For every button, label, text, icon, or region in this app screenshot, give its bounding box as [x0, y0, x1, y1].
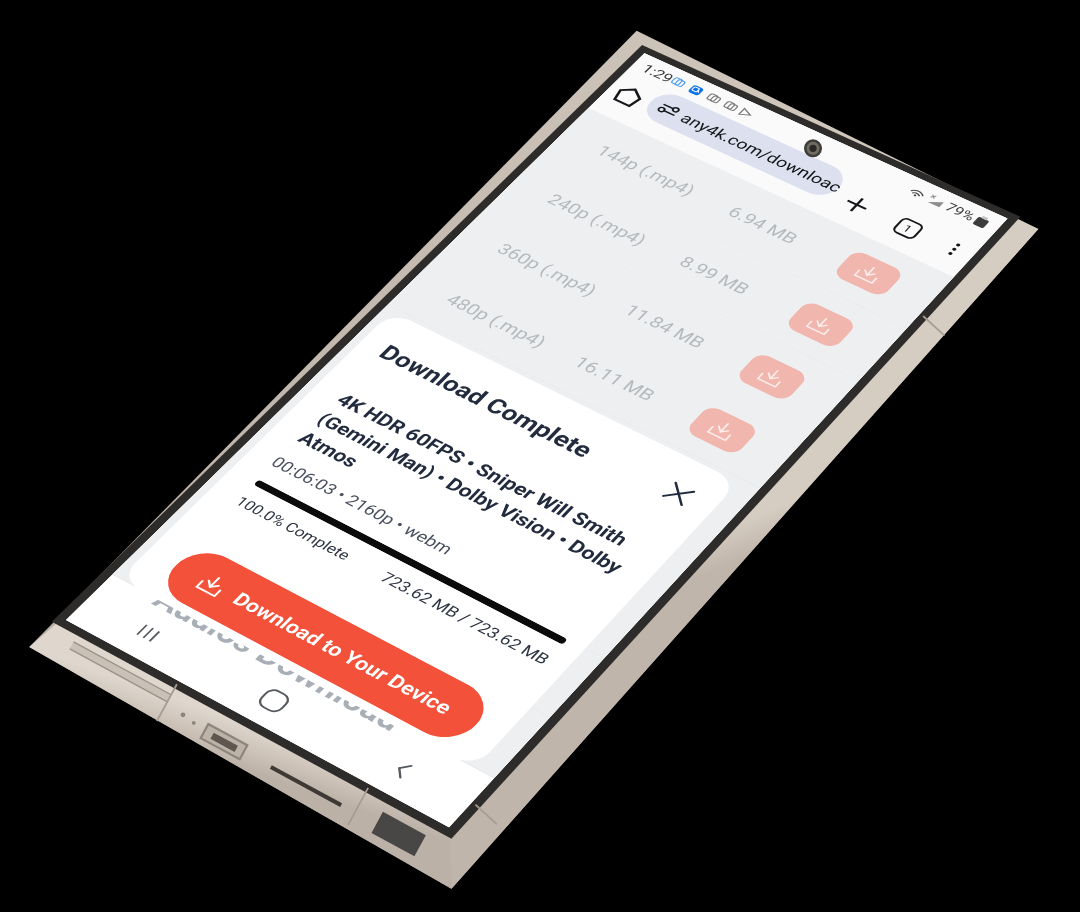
- button[interactable]: 240p (.mp4): [0, 180, 420, 262]
- staticText: 723.62 MB / 723.62 MB: [201, 698, 381, 718]
- staticText: 16.11 MB: [189, 376, 275, 399]
- staticText: 1440p (.mp4): [42, 625, 152, 648]
- staticText: 2160p (.mp4): [42, 708, 152, 731]
- button[interactable]: Download: [323, 449, 379, 491]
- staticText: 51.20 MB: [189, 542, 275, 565]
- staticText: 4K HDR 60FPS • Sniper Will Smith (Gemini…: [36, 540, 372, 623]
- button[interactable]: Download: [323, 283, 379, 325]
- staticText: 1080p (.mp4): [42, 542, 152, 565]
- staticText: 28.40 MB: [189, 459, 275, 482]
- staticText: Download Complete: [32, 464, 267, 494]
- staticText: 00:06:03 • 2160p • webm: [34, 639, 233, 660]
- button[interactable]: Download to Your Device: [40, 770, 372, 836]
- staticText: 94.75 MB: [189, 625, 275, 648]
- staticText: 248.3 MB: [189, 708, 275, 731]
- button[interactable]: Download: [323, 366, 379, 408]
- button[interactable]: Download: [323, 781, 379, 823]
- button[interactable]: Download: [323, 532, 379, 574]
- button[interactable]: 1440p (.mp4): [0, 595, 420, 677]
- button[interactable]: 360p (.mp4): [0, 263, 420, 345]
- staticText: 100.0% Complete: [37, 698, 162, 717]
- button[interactable]: 2160p (.mp4): [0, 678, 420, 760]
- button[interactable]: 4320p (.mp4): [0, 761, 420, 843]
- button[interactable]: Download: [323, 615, 379, 657]
- button[interactable]: 1080p (.mp4): [0, 512, 420, 594]
- staticText: Download to Your Device: [108, 791, 343, 816]
- button[interactable]: Download: [323, 698, 379, 740]
- button[interactable]: Back: [280, 852, 420, 910]
- button[interactable]: Close: [346, 459, 380, 493]
- button[interactable]: 480p (.mp4): [0, 346, 420, 428]
- button[interactable]: 720p (.mp4): [0, 429, 420, 511]
